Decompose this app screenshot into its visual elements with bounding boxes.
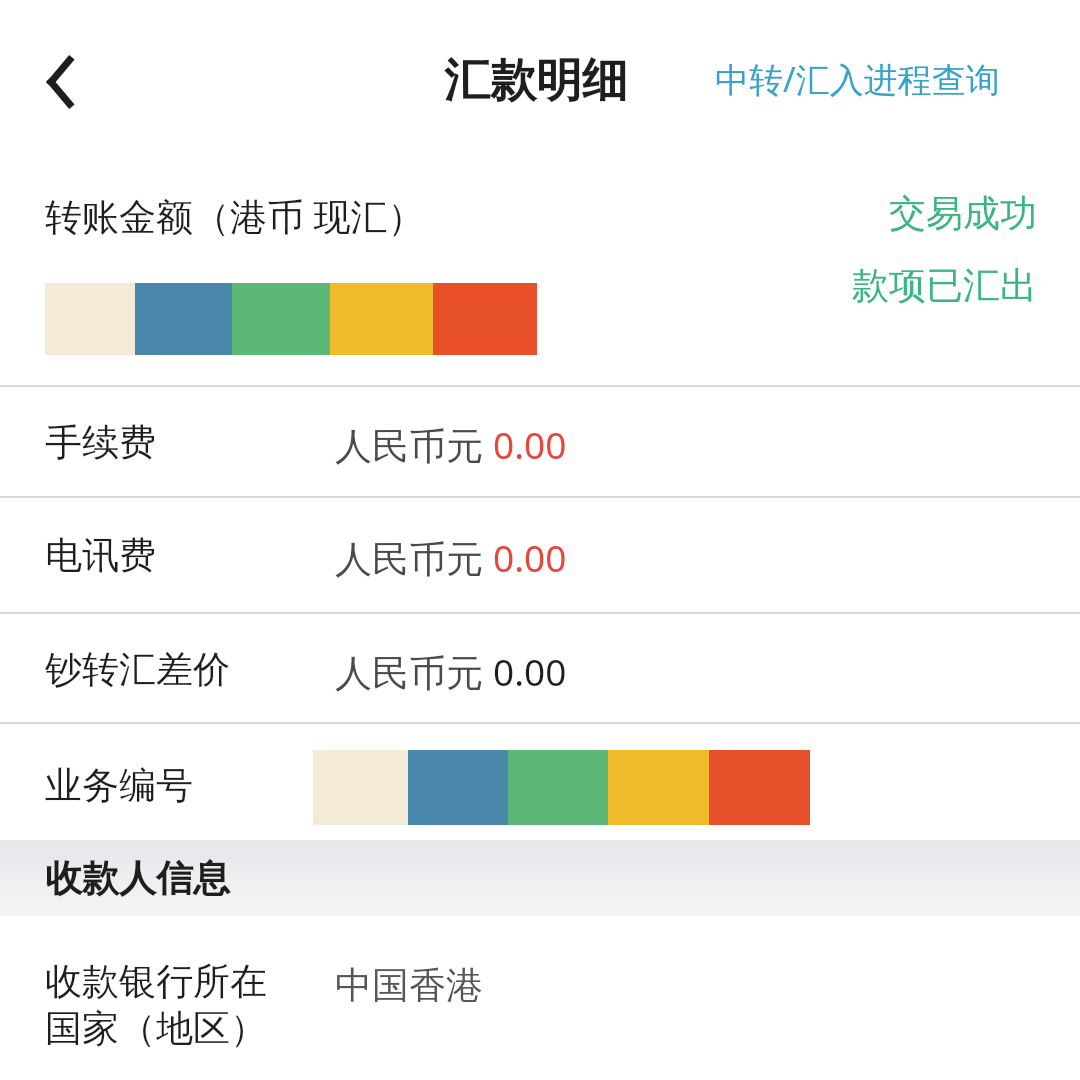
button[interactable]: 中转/汇入进程查询 — [701, 44, 1014, 114]
staticText: 钞转汇差价 — [45, 646, 230, 693]
button[interactable]: 钞转汇差价 — [0, 614, 1080, 722]
staticText: 0.00 — [493, 532, 567, 582]
staticText: 0.00 — [493, 646, 567, 696]
staticText: 中国香港 — [335, 962, 483, 1009]
staticText: 款项已汇出 — [637, 262, 1037, 309]
staticText: 国家（地区） — [45, 1005, 267, 1052]
staticText: 人民币元 — [335, 532, 493, 583]
staticText: 人民币元 — [335, 419, 493, 470]
button[interactable]: 业务编号 — [0, 724, 1080, 840]
staticText: 0.00 — [493, 419, 567, 469]
staticText: 交易成功 — [637, 190, 1037, 237]
staticText: 汇款明细 — [444, 52, 628, 110]
staticText: 电讯费 — [45, 532, 156, 579]
staticText: 业务编号 — [45, 762, 193, 809]
button[interactable]: 返回 — [24, 42, 96, 122]
button[interactable]: 电讯费 — [0, 498, 1080, 612]
staticText: 手续费 — [45, 419, 156, 466]
staticText: 收款人信息 — [45, 855, 230, 902]
button[interactable]: 手续费 — [0, 387, 1080, 496]
button[interactable]: 收款银行所在 — [0, 916, 1080, 1080]
staticText: 人民币元 — [335, 646, 493, 697]
staticText: 收款银行所在 — [45, 958, 267, 1005]
staticText: 转账金额（港币 现汇） — [45, 190, 425, 241]
staticText: 中转/汇入进程查询 — [715, 56, 1000, 102]
